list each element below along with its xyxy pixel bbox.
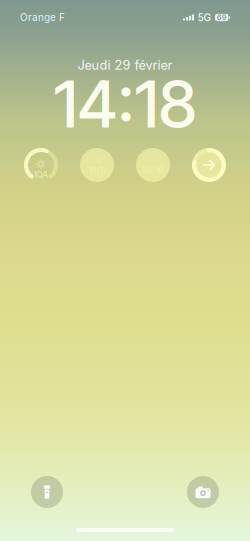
staticText: 14:18 xyxy=(53,65,196,143)
staticText: 10/11 xyxy=(88,165,105,175)
button[interactable]: Weather xyxy=(77,145,117,185)
staticText: 05/16 xyxy=(142,165,163,175)
staticText: IQA xyxy=(34,169,48,180)
staticText: Jeudi 29 février xyxy=(77,57,172,73)
staticText: Orange F xyxy=(20,11,65,23)
staticText: L xyxy=(98,157,102,165)
staticText: 69 xyxy=(217,13,227,22)
button[interactable]: Camera xyxy=(183,472,223,512)
button[interactable]: Flashlight xyxy=(27,472,67,512)
button[interactable]: Activity xyxy=(189,145,229,185)
button[interactable]: Air quality xyxy=(21,145,61,185)
button[interactable]: Calendar xyxy=(133,145,173,185)
staticText: 5G xyxy=(197,11,211,24)
